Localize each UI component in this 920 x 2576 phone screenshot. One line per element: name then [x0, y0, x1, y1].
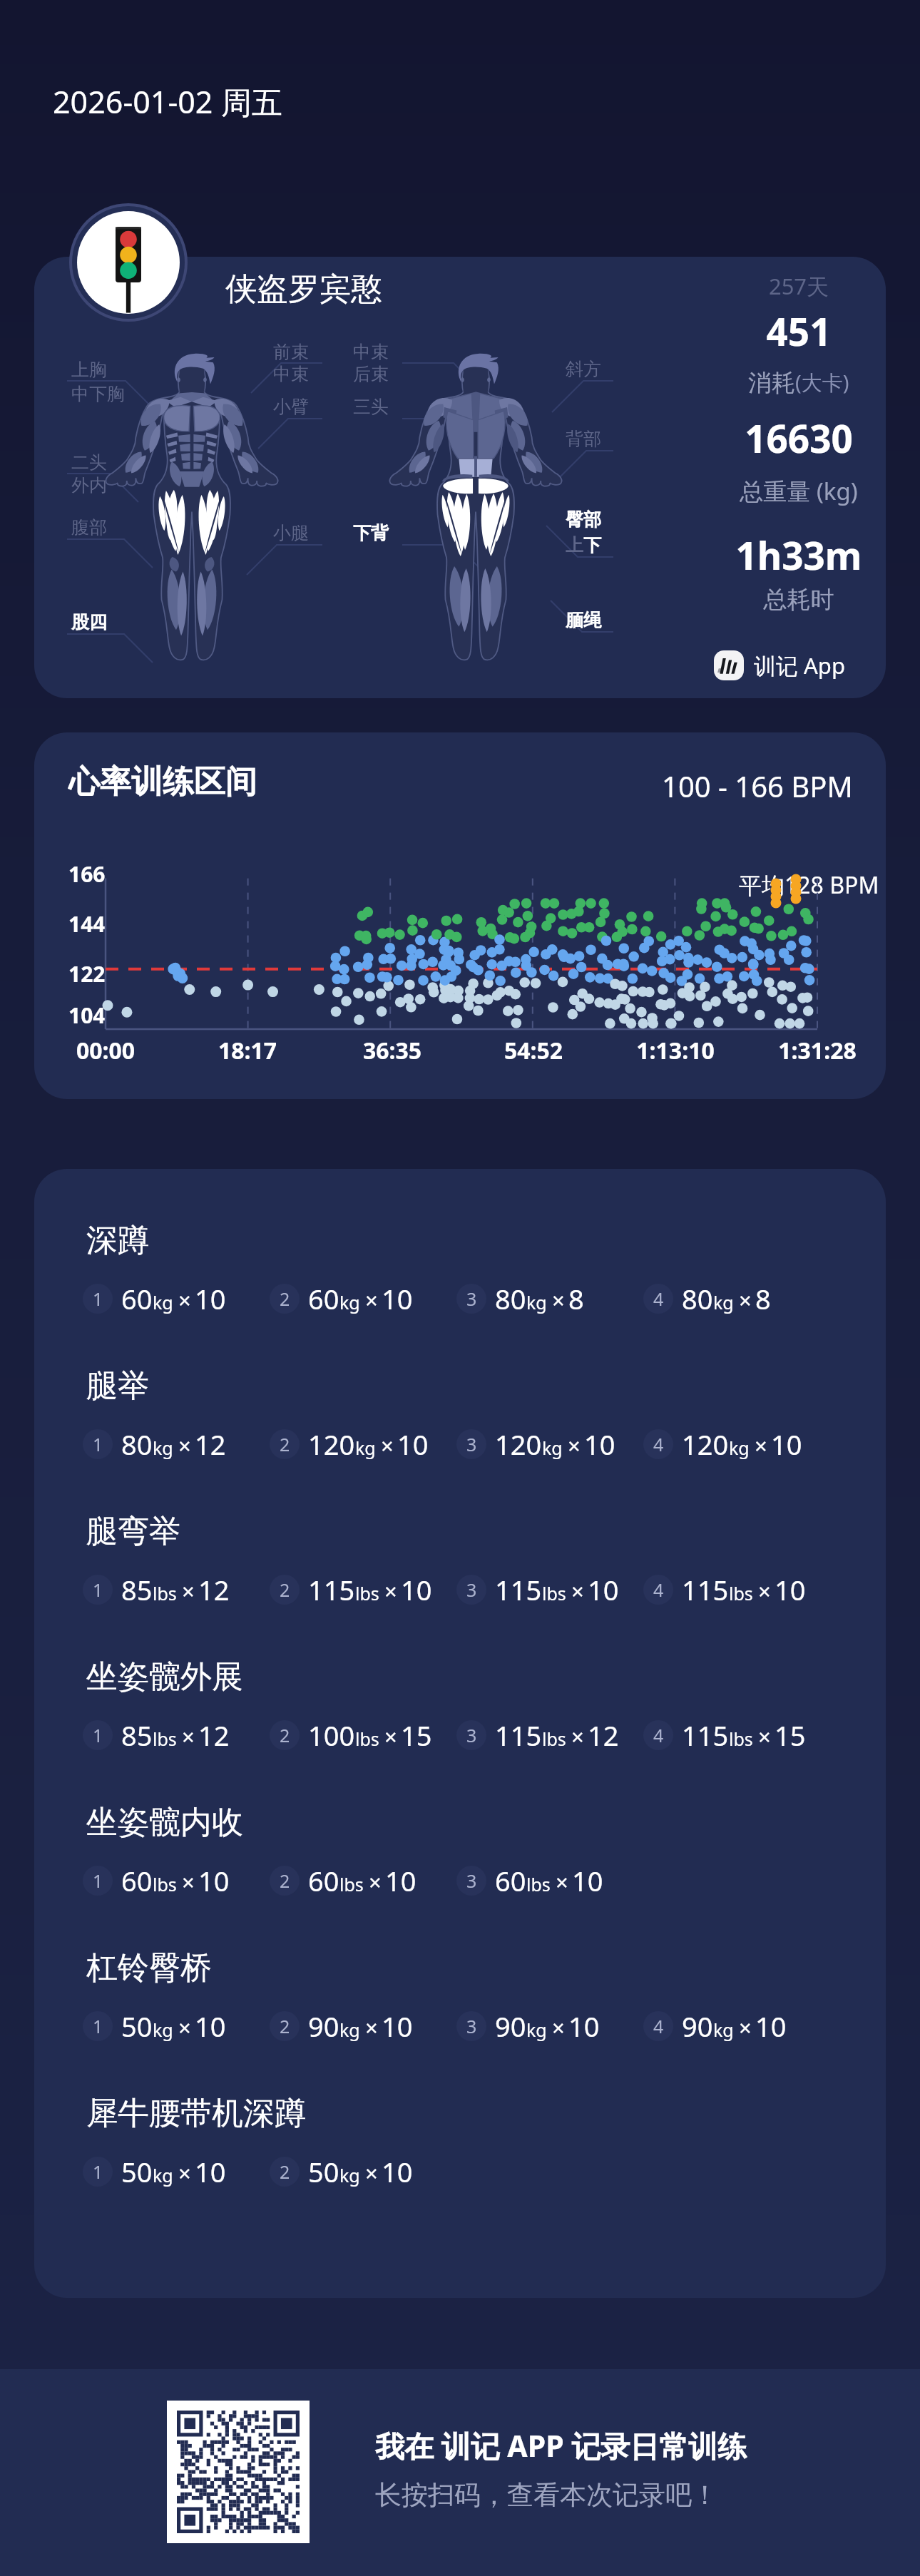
staticText: 臀部	[566, 508, 601, 531]
staticText: ×	[178, 1285, 191, 1315]
staticText: 犀牛腰带机深蹲	[86, 2094, 306, 2133]
staticText: lbs	[355, 1727, 379, 1751]
staticText: 90	[308, 2008, 339, 2045]
staticText: 下	[583, 534, 601, 556]
button[interactable]: 1	[83, 1426, 226, 1463]
staticText: 4	[653, 2014, 664, 2038]
button[interactable]: 4	[643, 1717, 806, 1754]
staticText: 50	[121, 2153, 153, 2190]
staticText: 坐姿髋内收	[86, 1803, 243, 1842]
staticText: ×	[365, 2013, 378, 2043]
staticText: kg	[713, 2018, 734, 2042]
staticText: 10	[568, 2008, 600, 2045]
staticText: 总耗时	[656, 585, 886, 615]
button[interactable]: 2	[270, 2153, 413, 2190]
staticText: 1:13:10	[611, 1035, 740, 1066]
button[interactable]: 2	[270, 1426, 429, 1463]
staticText: 115	[495, 1571, 542, 1608]
staticText: 12	[588, 1717, 619, 1754]
staticText: 144	[68, 909, 106, 939]
staticText: ×	[182, 1867, 195, 1897]
staticText: 90	[682, 2008, 713, 2045]
staticText: 我在 训记 APP 记录日常训练	[375, 2426, 747, 2465]
button[interactable]: 1	[83, 1717, 230, 1754]
button[interactable]: 2	[270, 1280, 413, 1317]
button[interactable]: 训记 App	[714, 650, 845, 680]
button[interactable]: 2	[270, 1571, 432, 1608]
staticText: 心率训练区间	[68, 762, 257, 802]
button[interactable]: 3	[456, 1280, 584, 1317]
staticText: 1	[93, 1287, 103, 1311]
button[interactable]: 侠盗罗宾憨	[34, 257, 886, 698]
staticText: ×	[178, 2013, 191, 2043]
staticText: 8	[568, 1280, 584, 1317]
staticText: (大卡)	[795, 368, 849, 397]
staticText: 10	[755, 2008, 787, 2045]
staticText: ×	[384, 1576, 397, 1606]
staticText: 背部	[566, 428, 601, 450]
button[interactable]: 2	[270, 1862, 416, 1899]
staticText: 上胸	[71, 359, 107, 381]
staticText: 三头	[353, 396, 389, 418]
staticText: 3	[466, 1578, 477, 1602]
staticText: ×	[182, 1722, 195, 1752]
staticText: lbs	[729, 1581, 753, 1605]
button[interactable]: 2	[270, 2008, 413, 2045]
staticText: ×	[755, 1431, 767, 1461]
staticText: 10	[584, 1426, 615, 1463]
staticText: ×	[758, 1722, 771, 1752]
staticText: 115	[308, 1571, 355, 1608]
button[interactable]: 1	[83, 1280, 226, 1317]
staticText: ×	[568, 1431, 581, 1461]
staticText: 104	[68, 1001, 106, 1030]
staticText: ×	[369, 1867, 382, 1897]
staticText: 3	[466, 1287, 477, 1311]
staticText: 60	[121, 1862, 153, 1899]
staticText: 腿举	[86, 1366, 149, 1406]
staticText: 小腿	[273, 522, 309, 544]
staticText: 00:00	[41, 1035, 170, 1066]
button[interactable]: 1	[83, 1862, 230, 1899]
staticText: ×	[552, 1285, 565, 1315]
staticText: 4	[653, 1432, 664, 1456]
button[interactable]: 3	[456, 1717, 619, 1754]
staticText: 10	[401, 1571, 432, 1608]
staticText: 60	[495, 1862, 526, 1899]
button[interactable]: 1	[83, 1571, 230, 1608]
staticText: 10	[397, 1426, 429, 1463]
staticText: 4	[653, 1723, 664, 1747]
staticText: 1:31:28	[753, 1035, 881, 1066]
staticText: 10	[572, 1862, 603, 1899]
staticText: 10	[382, 1280, 413, 1317]
staticText: 10	[588, 1571, 619, 1608]
button[interactable]: 2	[270, 1717, 432, 1754]
staticText: lbs	[153, 1581, 177, 1605]
staticText: ×	[178, 2158, 191, 2188]
button[interactable]: 4	[643, 1571, 806, 1608]
staticText: 10	[382, 2153, 413, 2190]
staticText: 2	[280, 1578, 290, 1602]
button[interactable]: 3	[456, 1862, 603, 1899]
button[interactable]: 3	[456, 1571, 619, 1608]
button[interactable]: 1	[83, 2153, 226, 2190]
button[interactable]: 1	[83, 2008, 226, 2045]
staticText: 1	[93, 1723, 103, 1747]
button[interactable]: 3	[456, 2008, 600, 2045]
button[interactable]: 3	[456, 1426, 615, 1463]
button[interactable]: 4	[643, 1280, 771, 1317]
staticText: 60	[121, 1280, 153, 1317]
staticText: 50	[308, 2153, 339, 2190]
staticText: 115	[682, 1717, 729, 1754]
staticText: 54:52	[469, 1035, 598, 1066]
button[interactable]: 4	[643, 2008, 787, 2045]
staticText: 120	[308, 1426, 355, 1463]
button[interactable]: 4	[643, 1426, 802, 1463]
staticText: lbs	[355, 1581, 379, 1605]
staticText: lbs	[153, 1872, 177, 1896]
staticText: 1	[93, 2160, 103, 2184]
staticText: 小臂	[273, 396, 309, 418]
staticText: lbs	[339, 1872, 364, 1896]
staticText: 2	[280, 2014, 290, 2038]
button[interactable]: 心率训练区间	[34, 732, 886, 1099]
staticText: kg	[339, 2163, 360, 2187]
